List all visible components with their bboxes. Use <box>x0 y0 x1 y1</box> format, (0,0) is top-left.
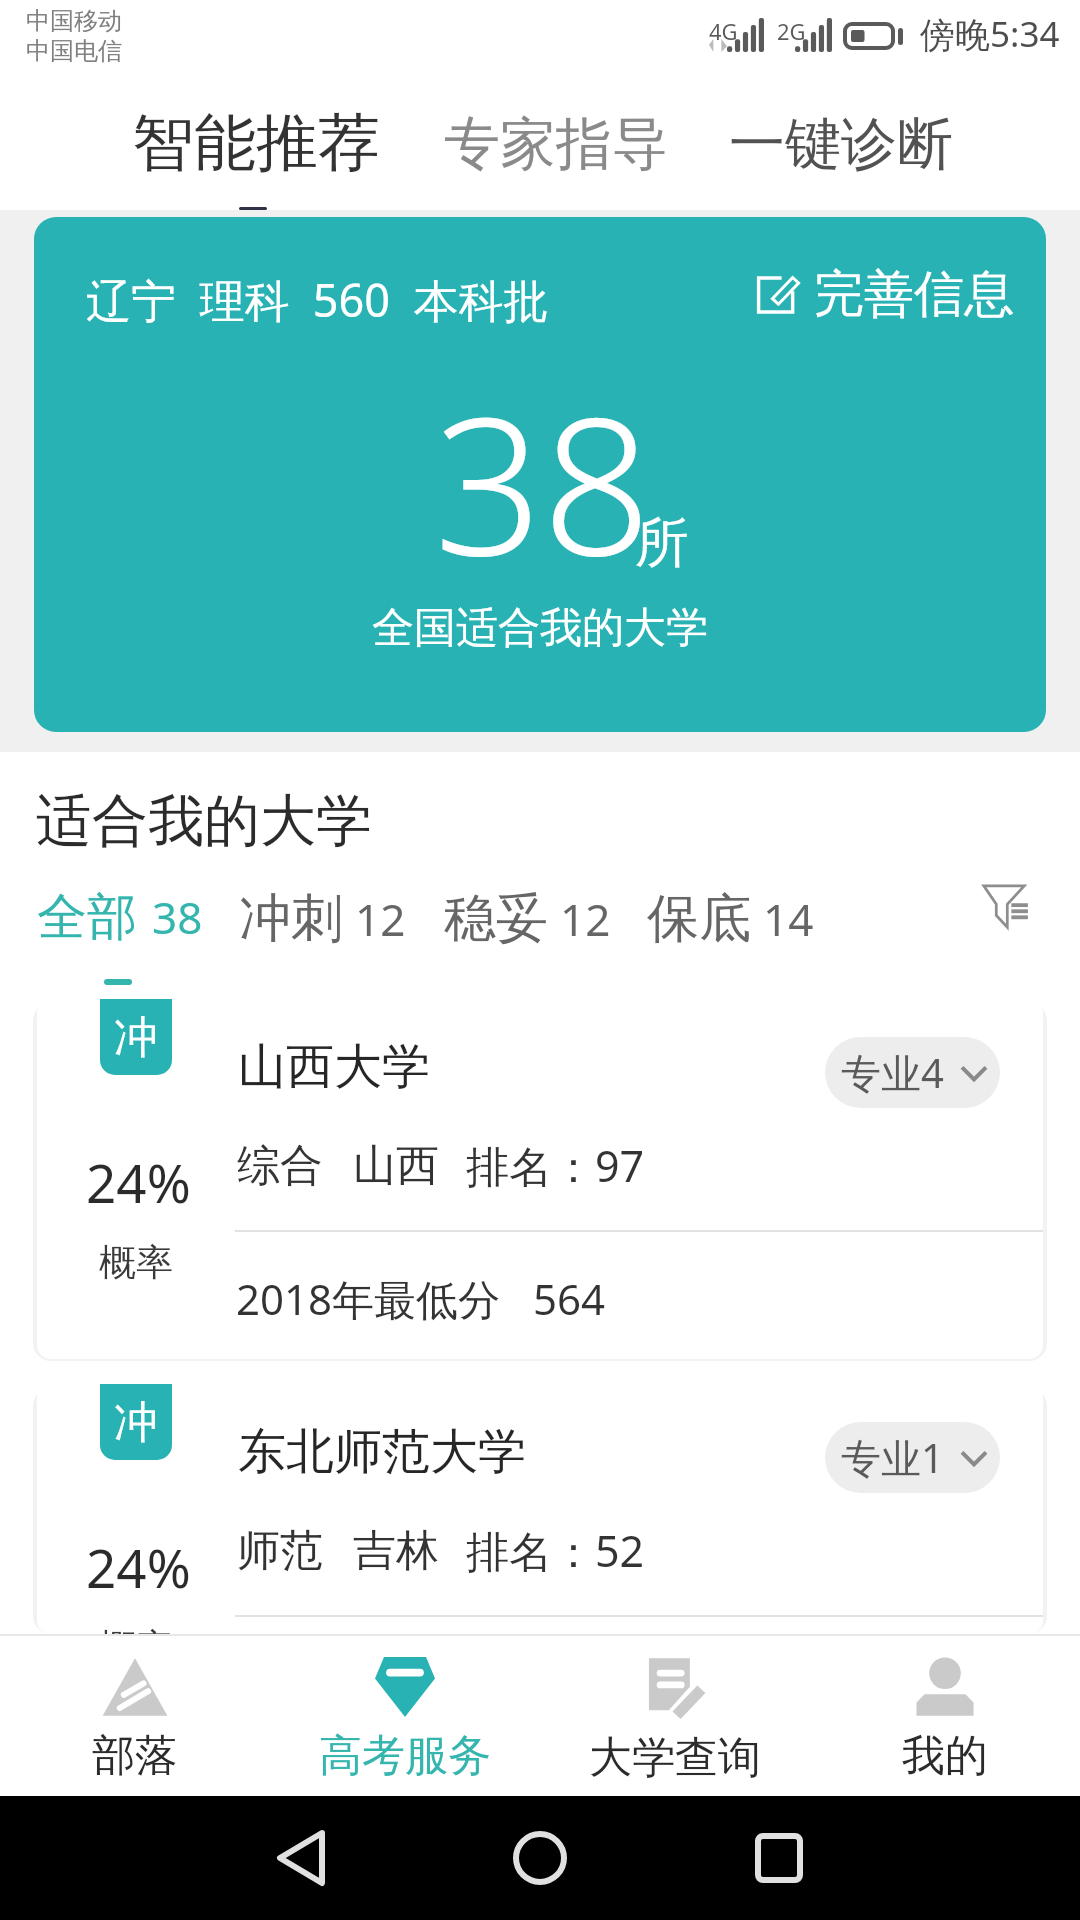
staticText: 适合我的大学 <box>36 786 372 848</box>
staticText: 辽宁 理科 560 本科批 <box>86 269 549 330</box>
staticText: 吉林 <box>353 1524 439 1578</box>
staticText: 全国适合我的大学 <box>372 602 708 655</box>
staticText: 38 <box>152 887 203 947</box>
staticText: 12 <box>355 889 406 949</box>
button[interactable]: 辽宁 理科 560 本科批 <box>34 217 1046 732</box>
staticText: 东北师范大学 <box>238 1422 526 1482</box>
button[interactable]: 部落 <box>0 1636 270 1796</box>
staticText: 中国电信 <box>26 36 122 66</box>
staticText: 14 <box>763 889 814 949</box>
button[interactable]: 全部 <box>37 886 203 949</box>
button[interactable]: 大学查询 <box>540 1636 810 1796</box>
button[interactable]: 保底 <box>647 886 814 952</box>
button[interactable]: 我的 <box>810 1636 1080 1796</box>
button[interactable]: 专业1 <box>825 1422 1000 1493</box>
button[interactable]: 智能推荐 <box>132 104 380 210</box>
staticText: 专业4 <box>841 1045 944 1100</box>
staticText: 冲刺 <box>239 886 343 952</box>
staticText: 12 <box>560 889 611 949</box>
button[interactable]: Back <box>255 1812 347 1904</box>
staticText: 全部 <box>37 886 137 949</box>
staticText: 24% <box>86 1531 191 1603</box>
staticText: 4G <box>709 16 738 46</box>
staticText: 师范 <box>237 1524 323 1578</box>
staticText: 冲 <box>114 1395 158 1450</box>
button[interactable]: 一键诊断 <box>729 104 953 180</box>
staticText: 大学查询 <box>589 1731 761 1785</box>
button[interactable]: 24% <box>37 999 1043 1359</box>
staticText: 专业1 <box>841 1430 944 1485</box>
button[interactable]: 冲刺 <box>239 886 406 952</box>
staticText: 我的 <box>902 1729 988 1783</box>
staticText: 38 <box>434 352 651 611</box>
button[interactable]: 完善信息 <box>754 263 1014 326</box>
staticText: 完善信息 <box>814 263 1014 326</box>
staticText: 综合 <box>237 1139 323 1193</box>
button[interactable]: 高考服务 <box>270 1636 540 1796</box>
staticText: 山西大学 <box>238 1037 430 1097</box>
button[interactable]: Filter <box>982 884 1026 929</box>
staticText: 稳妥 <box>444 886 548 952</box>
button[interactable]: 专业4 <box>825 1037 1000 1108</box>
staticText: 所 <box>635 509 689 577</box>
staticText: 排名：97 <box>466 1136 645 1195</box>
staticText: 冲 <box>114 1010 158 1065</box>
button[interactable]: 24% <box>37 1384 1043 1634</box>
staticText: 高考服务 <box>319 1729 491 1783</box>
staticText: 中国移动 <box>26 6 122 36</box>
staticText: 2G <box>777 16 806 46</box>
staticText: 564 <box>533 1270 606 1327</box>
staticText: 智能推荐 <box>132 104 380 182</box>
staticText: 专家指导 <box>444 109 668 180</box>
button[interactable]: 专家指导 <box>444 104 668 180</box>
button[interactable]: 稳妥 <box>444 886 611 952</box>
staticText: 概率 <box>99 1239 173 1286</box>
button[interactable]: Home <box>494 1812 586 1904</box>
staticText: 一键诊断 <box>729 109 953 180</box>
staticText: 概率 <box>99 1624 173 1634</box>
staticText: 傍晚5:34 <box>920 10 1060 58</box>
staticText: 山西 <box>353 1139 439 1193</box>
staticText: 排名：52 <box>466 1521 645 1580</box>
staticText: 24% <box>86 1146 191 1218</box>
staticText: 保底 <box>647 886 751 952</box>
staticText: 2018年最低分 <box>236 1270 501 1327</box>
button[interactable]: Recents <box>733 1812 825 1904</box>
staticText: 部落 <box>92 1729 178 1783</box>
